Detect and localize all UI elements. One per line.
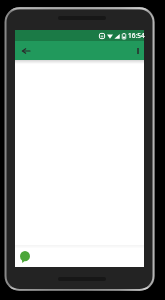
button[interactable]: New message <box>18 250 32 264</box>
button[interactable]: Back <box>17 42 35 60</box>
button[interactable]: More options <box>129 42 147 60</box>
staticText: 16:54 <box>128 31 145 40</box>
